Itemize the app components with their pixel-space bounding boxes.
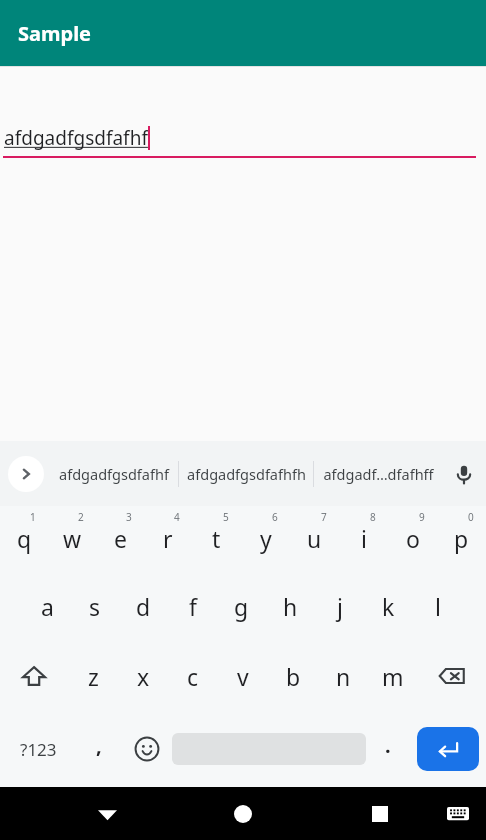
button[interactable]: Enter xyxy=(417,727,479,771)
button[interactable]: g xyxy=(217,571,266,641)
button[interactable]: Switch keyboard xyxy=(438,794,478,834)
button[interactable]: l xyxy=(413,571,462,641)
button[interactable]: t xyxy=(192,506,241,571)
button[interactable]: afdgadfgsdfafhf xyxy=(50,441,178,506)
button[interactable] xyxy=(172,711,366,787)
staticText: x xyxy=(137,661,150,692)
staticText: t xyxy=(212,523,221,554)
button[interactable]: c xyxy=(168,641,218,711)
button[interactable]: m xyxy=(368,641,418,711)
staticText: 0 xyxy=(468,510,474,524)
staticText: 8 xyxy=(370,510,376,524)
button[interactable]: o xyxy=(388,506,437,571)
button[interactable]: w xyxy=(48,506,96,571)
staticText: r xyxy=(163,523,173,554)
button[interactable]: , xyxy=(76,711,122,787)
button[interactable]: Expand suggestions xyxy=(8,456,44,492)
button[interactable]: i xyxy=(339,506,388,571)
button[interactable]: Emoji xyxy=(122,711,172,787)
staticText: s xyxy=(89,591,101,622)
button[interactable]: afdgadf…dfafhff xyxy=(314,441,442,506)
staticText: 6 xyxy=(272,510,278,524)
staticText: n xyxy=(336,661,351,692)
staticText: a xyxy=(41,591,54,622)
button[interactable]: z xyxy=(68,641,118,711)
staticText: v xyxy=(237,661,249,692)
staticText: h xyxy=(283,591,298,622)
staticText: 7 xyxy=(321,510,327,524)
staticText: . xyxy=(385,732,391,759)
staticText: 4 xyxy=(174,510,180,524)
staticText: ?123 xyxy=(20,738,57,761)
staticText: i xyxy=(361,523,367,554)
staticText: w xyxy=(63,523,82,554)
staticText: afdgadf…dfafhff xyxy=(323,464,434,484)
button[interactable]: p xyxy=(437,506,486,571)
staticText: 5 xyxy=(223,510,229,524)
button[interactable]: e xyxy=(96,506,144,571)
button[interactable]: Hide keyboard xyxy=(85,792,129,836)
button[interactable]: ?123 xyxy=(0,711,76,787)
staticText: b xyxy=(286,661,301,692)
staticText: e xyxy=(114,523,127,554)
staticText: 3 xyxy=(126,510,132,524)
staticText: Sample xyxy=(18,20,92,47)
button[interactable]: Shift xyxy=(0,641,68,711)
button[interactable]: s xyxy=(71,571,119,641)
button[interactable]: Backspace xyxy=(418,641,486,711)
button[interactable]: x xyxy=(118,641,168,711)
button[interactable]: n xyxy=(318,641,368,711)
button[interactable]: afdgadfgsdfafhf xyxy=(0,121,486,155)
staticText: c xyxy=(187,661,199,692)
staticText: 2 xyxy=(78,510,84,524)
staticText: afdgadfgsdfafhf xyxy=(4,125,148,151)
button[interactable]: h xyxy=(266,571,315,641)
staticText: u xyxy=(307,523,322,554)
staticText: afdgadfgsdfafhf xyxy=(59,464,169,484)
staticText: m xyxy=(382,661,404,692)
staticText: 9 xyxy=(419,510,425,524)
staticText: afdgadfgsdfafhfh xyxy=(187,464,306,484)
staticText: p xyxy=(454,523,469,554)
button[interactable]: y xyxy=(241,506,290,571)
staticText: f xyxy=(189,591,197,622)
button[interactable]: k xyxy=(364,571,413,641)
staticText: k xyxy=(382,591,395,622)
button[interactable]: d xyxy=(119,571,168,641)
staticText: l xyxy=(435,591,441,622)
staticText: , xyxy=(96,732,102,759)
button[interactable]: r xyxy=(144,506,192,571)
button[interactable]: q xyxy=(0,506,48,571)
button[interactable]: f xyxy=(168,571,217,641)
button[interactable]: Voice input xyxy=(442,441,486,506)
staticText: j xyxy=(337,591,343,622)
button[interactable]: j xyxy=(315,571,364,641)
button[interactable]: a xyxy=(23,571,71,641)
button[interactable]: . xyxy=(366,711,410,787)
staticText: z xyxy=(88,661,99,692)
button[interactable]: afdgadfgsdfafhfh xyxy=(179,441,313,506)
button[interactable]: u xyxy=(290,506,339,571)
button[interactable]: Home xyxy=(221,792,265,836)
button[interactable]: v xyxy=(218,641,268,711)
staticText: d xyxy=(136,591,151,622)
button[interactable]: Recents xyxy=(358,792,402,836)
staticText: g xyxy=(234,591,249,622)
staticText: o xyxy=(406,523,420,554)
staticText: q xyxy=(17,523,32,554)
button[interactable]: b xyxy=(268,641,318,711)
staticText: 1 xyxy=(30,510,36,524)
staticText: y xyxy=(260,523,272,554)
